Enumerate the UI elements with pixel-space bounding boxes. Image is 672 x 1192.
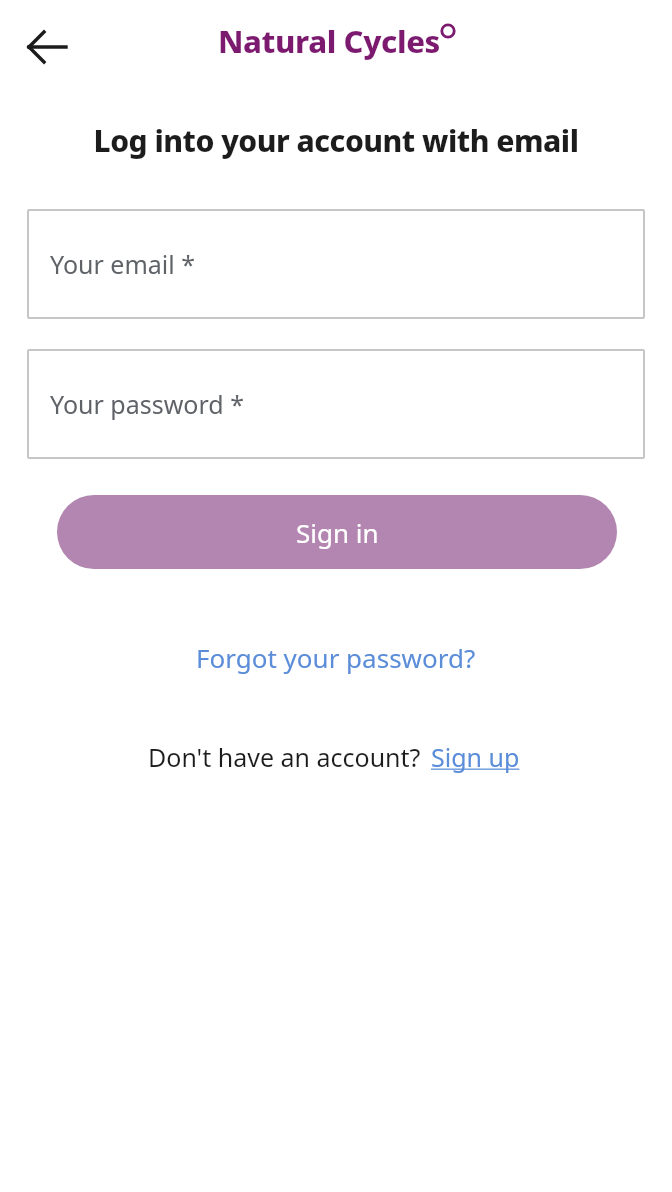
staticText: Your password *: [50, 387, 244, 421]
staticText: Sign up: [431, 740, 520, 774]
staticText: Don't have an account?: [148, 740, 421, 774]
button[interactable]: Sign in: [57, 495, 617, 569]
button[interactable]: Your email *: [27, 209, 645, 319]
staticText: Natural Cycles: [218, 20, 440, 62]
staticText: Forgot your password?: [196, 640, 476, 675]
staticText: Your email *: [50, 247, 195, 281]
button[interactable]: Sign up: [421, 738, 524, 776]
staticText: Sign in: [296, 515, 379, 550]
button[interactable]: Back: [18, 17, 78, 77]
button[interactable]: Forgot your password?: [184, 634, 488, 681]
button[interactable]: Your password *: [27, 349, 645, 459]
staticText: Log into your account with email: [20, 120, 652, 161]
